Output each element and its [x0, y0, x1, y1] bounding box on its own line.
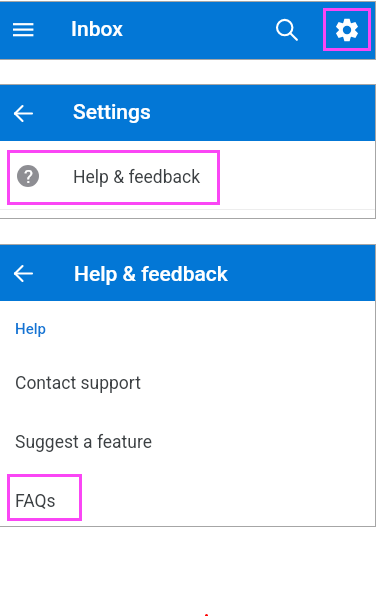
- button[interactable]: Settings: [323, 8, 371, 51]
- button[interactable]: Help: [7, 150, 220, 205]
- staticText: Help: [15, 320, 46, 338]
- staticText: Contact support: [15, 373, 141, 394]
- staticText: Help & feedback: [74, 262, 228, 287]
- other: Help: [17, 165, 39, 187]
- staticText: Inbox: [71, 17, 123, 42]
- staticText: Settings: [73, 100, 151, 125]
- button[interactable]: Suggest a feature: [0, 424, 375, 460]
- button[interactable]: Back: [14, 104, 33, 123]
- staticText: ?: [24, 165, 33, 187]
- button[interactable]: Navigation menu: [13, 16, 35, 38]
- button[interactable]: Search: [271, 14, 299, 42]
- button[interactable]: Back: [14, 264, 33, 283]
- button[interactable]: Contact support: [0, 365, 375, 401]
- staticText: Suggest a feature: [15, 432, 153, 453]
- button[interactable]: FAQs: [7, 474, 82, 521]
- staticText: Help & feedback: [73, 167, 201, 188]
- staticText: FAQs: [15, 491, 56, 512]
